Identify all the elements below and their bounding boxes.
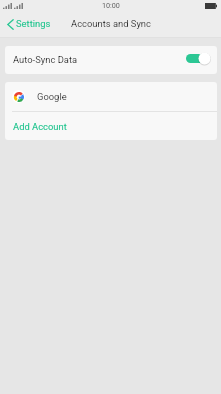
button[interactable]: Auto-Sync Data: [5, 46, 217, 74]
button[interactable]: Auto-Sync Data toggle: [186, 52, 211, 65]
button[interactable]: Add Account: [5, 112, 217, 140]
staticText: Auto-Sync Data: [13, 54, 78, 65]
staticText: 10:00: [102, 1, 120, 9]
button[interactable]: Settings: [0, 17, 57, 34]
staticText: Add Account: [13, 121, 67, 132]
staticText: Accounts and Sync: [71, 18, 151, 29]
button[interactable]: Google: [5, 82, 217, 111]
staticText: Settings: [16, 18, 51, 29]
staticText: Google: [37, 91, 67, 102]
